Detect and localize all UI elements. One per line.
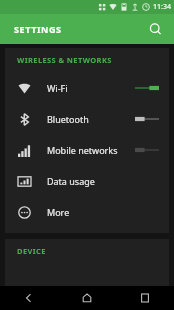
staticText: Data usage [47, 175, 159, 187]
button[interactable]: Back [14, 286, 44, 310]
staticText: Mobile networks [47, 144, 135, 156]
staticText: 11:34 [153, 2, 171, 12]
button[interactable]: Data usage [5, 165, 169, 196]
staticText: DEVICE [17, 246, 46, 256]
button[interactable]: More [5, 196, 169, 227]
staticText: Bluetooth [47, 113, 135, 125]
button[interactable]: Toggle [135, 81, 159, 95]
staticText: Wi-Fi [47, 82, 135, 94]
button[interactable]: Mobile networks [5, 134, 169, 165]
staticText: More [47, 206, 159, 218]
button[interactable]: Toggle [135, 112, 159, 126]
staticText: WIRELESS & NETWORKS [17, 55, 112, 65]
button[interactable]: Bluetooth [5, 103, 169, 134]
staticText: SETTINGS [14, 23, 62, 35]
button[interactable]: Wi-Fi [5, 72, 169, 103]
button[interactable]: Toggle [135, 143, 159, 157]
button[interactable]: Recents [130, 286, 160, 310]
button[interactable]: Home [72, 286, 102, 310]
button[interactable]: Search [144, 18, 166, 40]
